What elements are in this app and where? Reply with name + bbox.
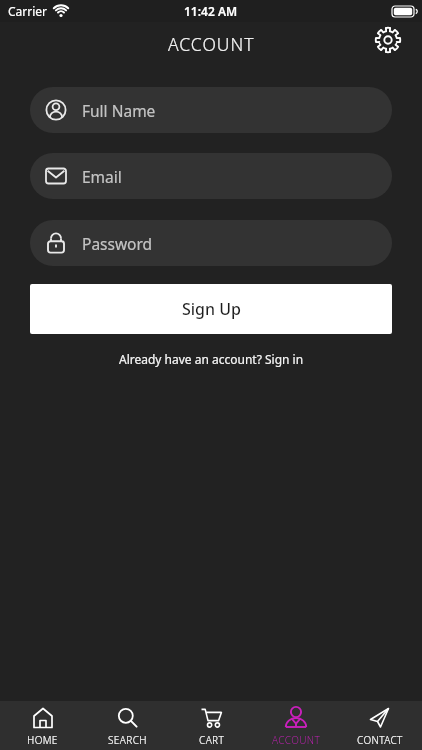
button[interactable]: Already have an account? Sign in [0,351,422,367]
button[interactable]: CONTACT [338,701,422,750]
staticText: Password [82,233,153,254]
staticText: SEARCH [108,733,147,747]
button[interactable]: HOME [0,701,85,750]
button[interactable]: Sign Up [30,284,392,334]
staticText: Carrier [8,3,48,19]
staticText: 11:42 AM [184,3,238,19]
staticText: Full Name [82,100,156,121]
button[interactable]: ACCOUNT [254,701,338,750]
button[interactable]: Email [30,153,392,199]
button[interactable] [374,26,402,54]
button[interactable]: CART [170,701,254,750]
button[interactable]: Password [30,220,392,266]
staticText: Already have an account? Sign in [119,351,304,367]
staticText: CART [199,733,225,747]
button[interactable]: SEARCH [85,701,170,750]
staticText: ACCOUNT [168,32,255,56]
staticText: HOME [27,733,58,747]
staticText: Email [82,166,122,187]
staticText: ACCOUNT [272,733,321,747]
staticText: CONTACT [357,733,403,747]
button[interactable]: Full Name [30,87,392,133]
staticText: Sign Up [182,298,241,320]
